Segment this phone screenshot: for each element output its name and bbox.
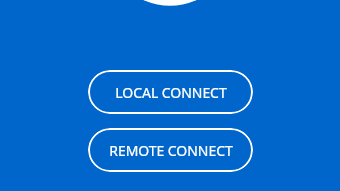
button[interactable]: LOCAL CONNECT xyxy=(88,70,253,114)
staticText: LOCAL CONNECT xyxy=(115,83,227,102)
button[interactable]: REMOTE CONNECT xyxy=(88,128,253,172)
staticText: REMOTE CONNECT xyxy=(109,141,233,160)
